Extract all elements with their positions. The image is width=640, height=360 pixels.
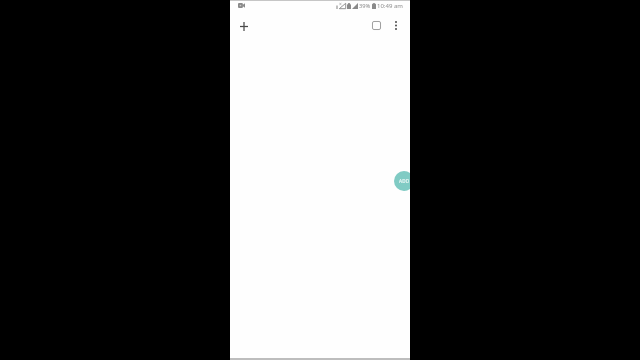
button[interactable]: Add bbox=[394, 171, 410, 191]
staticText: 10:49 am bbox=[377, 2, 403, 10]
button[interactable]: More options bbox=[387, 16, 405, 34]
staticText: 39% bbox=[359, 2, 371, 10]
button[interactable]: Add bbox=[235, 17, 253, 35]
staticText: ADD bbox=[399, 178, 410, 184]
button[interactable]: Overview bbox=[367, 16, 385, 34]
